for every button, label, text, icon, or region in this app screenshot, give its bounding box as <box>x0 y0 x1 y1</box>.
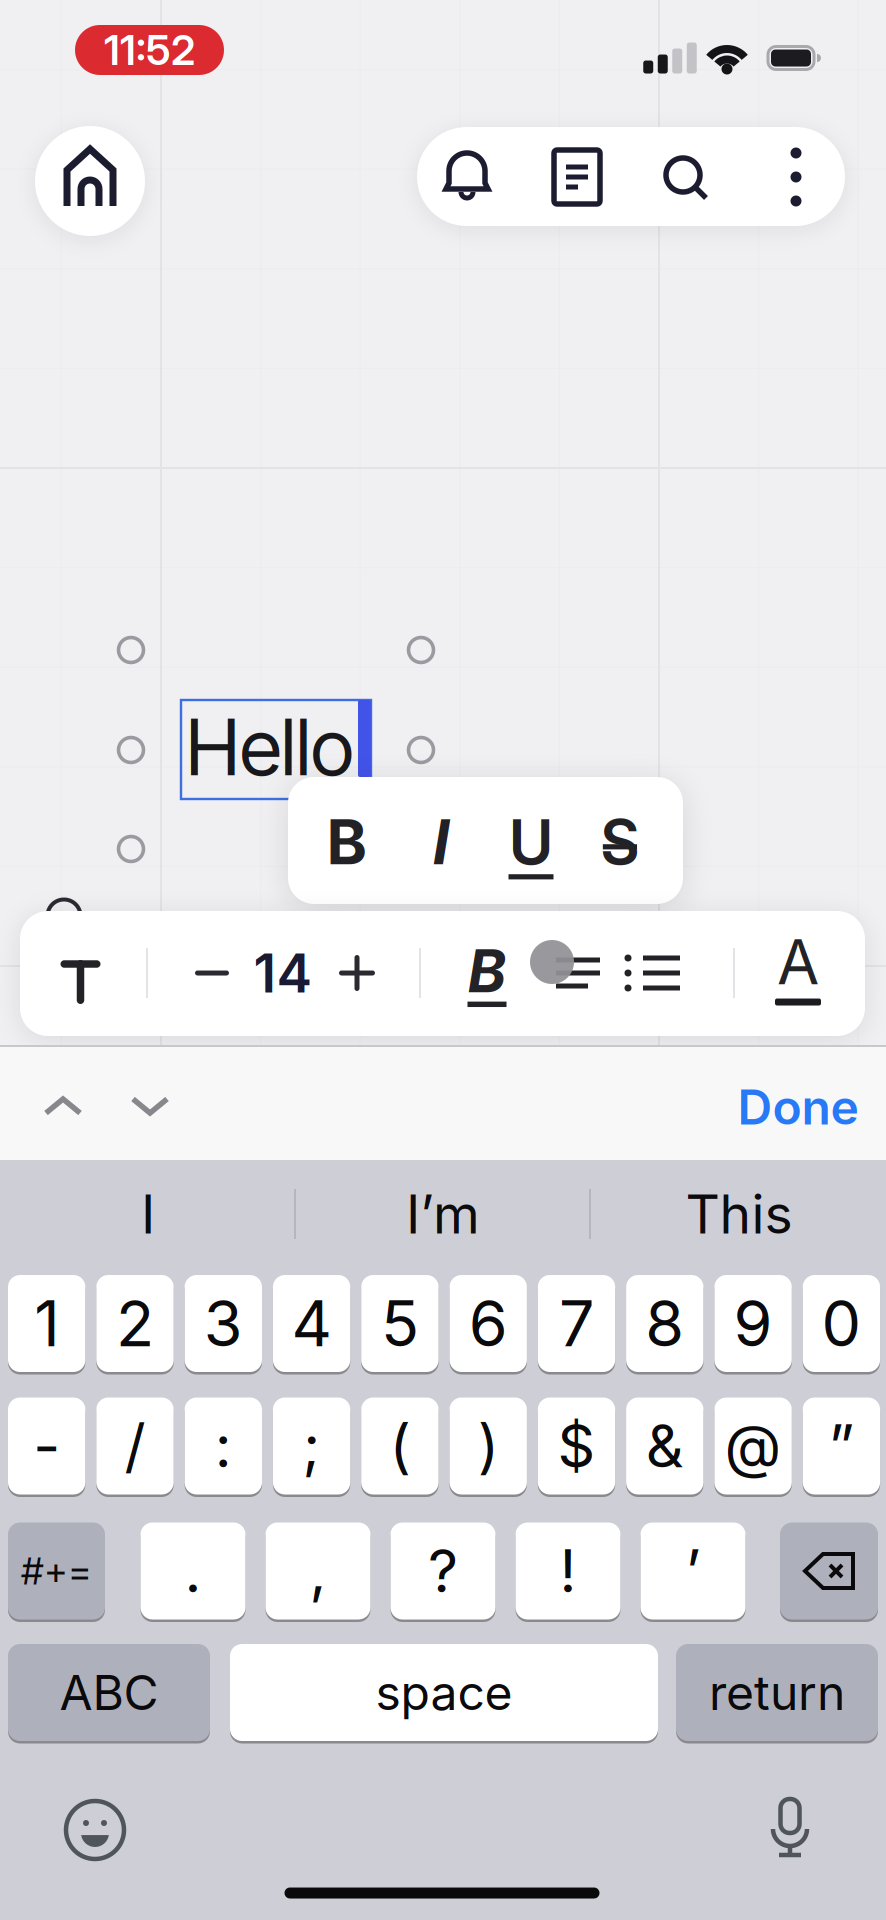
staticText: $ <box>557 1410 595 1481</box>
button[interactable]: ; <box>273 1397 350 1494</box>
button[interactable]: B <box>449 916 525 1026</box>
staticText: ; <box>303 1410 321 1481</box>
staticText: return <box>709 1663 845 1722</box>
staticText: ( <box>389 1410 410 1481</box>
button[interactable]: 8 <box>626 1275 703 1372</box>
button[interactable]: : <box>185 1397 262 1494</box>
staticText: A <box>777 925 819 999</box>
button[interactable] <box>123 1091 177 1121</box>
button[interactable]: 4 <box>273 1275 350 1372</box>
button[interactable]: S <box>580 787 660 897</box>
staticText: 5 <box>381 1286 419 1361</box>
button[interactable]: 9 <box>714 1275 792 1372</box>
button[interactable]: & <box>626 1397 703 1494</box>
button[interactable]: 5 <box>361 1275 439 1372</box>
staticText: / <box>124 1410 145 1481</box>
button[interactable]: U <box>491 787 571 897</box>
button[interactable] <box>177 918 247 1028</box>
button[interactable]: #+= <box>8 1522 105 1619</box>
button[interactable]: Done <box>737 1078 858 1136</box>
button[interactable]: return <box>676 1644 878 1741</box>
staticText: U <box>508 805 553 879</box>
staticText: I <box>432 805 449 879</box>
button[interactable]: ’ <box>640 1522 745 1619</box>
button[interactable]: ( <box>361 1397 439 1494</box>
button[interactable]: 11:52 <box>75 25 224 75</box>
button[interactable] <box>35 918 125 1028</box>
button[interactable]: 3 <box>185 1275 262 1372</box>
button[interactable]: - <box>8 1397 85 1494</box>
button[interactable]: ? <box>390 1522 495 1619</box>
staticText: 6 <box>469 1286 508 1361</box>
staticText: 2 <box>116 1286 154 1361</box>
staticText: Hello! <box>186 700 373 794</box>
button[interactable]: 14 <box>243 918 323 1028</box>
staticText: I <box>141 1182 155 1246</box>
button[interactable]: 1 <box>8 1275 85 1372</box>
staticText: ) <box>478 1410 499 1481</box>
button[interactable]: ABC <box>8 1644 210 1741</box>
staticText: 4 <box>292 1286 332 1361</box>
button[interactable] <box>640 127 730 226</box>
button[interactable]: $ <box>538 1397 615 1494</box>
button[interactable]: @ <box>714 1397 792 1494</box>
button[interactable]: 2 <box>96 1275 174 1372</box>
staticText: 1 <box>34 1286 59 1361</box>
button[interactable] <box>766 127 826 226</box>
staticText: : <box>215 1410 232 1481</box>
staticText: , <box>309 1535 326 1606</box>
button[interactable]: I <box>401 787 481 897</box>
staticText: 0 <box>821 1286 861 1361</box>
staticText: & <box>646 1410 684 1481</box>
button[interactable]: A <box>760 918 836 1028</box>
button[interactable]: I’m <box>298 1169 588 1259</box>
button[interactable]: space <box>230 1644 658 1741</box>
staticText: @ <box>725 1410 782 1481</box>
button[interactable]: B <box>307 787 387 897</box>
staticText: 11:52 <box>104 25 195 75</box>
staticText: 3 <box>204 1286 243 1361</box>
button[interactable]: 0 <box>803 1275 880 1372</box>
button[interactable]: ) <box>449 1397 527 1494</box>
button[interactable]: 7 <box>538 1275 615 1372</box>
staticText: ? <box>428 1535 458 1606</box>
staticText: Done <box>737 1078 858 1136</box>
staticText: ’ <box>685 1535 700 1606</box>
staticText: ! <box>559 1535 576 1606</box>
staticText: I’m <box>406 1182 480 1246</box>
staticText: space <box>375 1663 512 1722</box>
button[interactable]: / <box>96 1397 174 1494</box>
staticText: ” <box>828 1410 854 1481</box>
button[interactable] <box>35 126 145 236</box>
staticText: . <box>184 1535 201 1606</box>
staticText: B <box>467 935 506 1006</box>
button[interactable] <box>66 1801 124 1859</box>
staticText: - <box>33 1410 60 1481</box>
staticText: 7 <box>559 1286 594 1361</box>
button[interactable] <box>614 918 690 1028</box>
staticText: ABC <box>59 1663 158 1722</box>
button[interactable] <box>763 1797 817 1859</box>
button[interactable]: , <box>265 1522 370 1619</box>
button[interactable] <box>322 918 392 1028</box>
button[interactable] <box>422 127 512 226</box>
staticText: S <box>600 805 640 879</box>
button[interactable]: ! <box>515 1522 620 1619</box>
button[interactable] <box>780 1522 878 1619</box>
button[interactable]: . <box>140 1522 245 1619</box>
button[interactable] <box>532 127 622 226</box>
button[interactable] <box>540 918 616 1028</box>
staticText: 9 <box>734 1286 773 1361</box>
staticText: This <box>685 1182 792 1246</box>
button[interactable]: This <box>594 1169 884 1259</box>
button[interactable] <box>36 1091 90 1121</box>
staticText: 14 <box>253 941 312 1005</box>
button[interactable]: I <box>3 1169 293 1259</box>
button[interactable]: 6 <box>449 1275 527 1372</box>
button[interactable]: ” <box>803 1397 880 1494</box>
staticText: B <box>326 805 367 879</box>
staticText: #+= <box>21 1548 92 1594</box>
staticText: 8 <box>645 1286 684 1361</box>
